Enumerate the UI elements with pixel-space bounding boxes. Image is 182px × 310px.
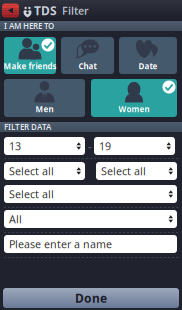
- staticText: Done: [75, 290, 107, 306]
- button[interactable]: Make friends: [4, 37, 56, 74]
- button[interactable]: All: [4, 210, 177, 228]
- button[interactable]: Select all: [96, 162, 177, 180]
- staticText: Please enter a name: [9, 237, 112, 251]
- button[interactable]: Women: [91, 79, 177, 117]
- staticText: Filter: [62, 3, 89, 18]
- button[interactable]: 19: [94, 137, 175, 155]
- staticText: Men: [35, 104, 53, 114]
- staticText: FILTER DATA: [4, 122, 51, 132]
- staticText: Chat: [78, 61, 96, 71]
- staticText: I AM HERE TO: [4, 21, 54, 31]
- staticText: 19: [99, 139, 111, 153]
- staticText: Date: [138, 61, 157, 71]
- staticText: Women: [118, 104, 149, 114]
- button[interactable]: Back: [0, 3, 19, 17]
- staticText: All: [9, 212, 22, 226]
- button[interactable]: Men: [4, 79, 85, 117]
- button[interactable]: Select all: [4, 162, 85, 180]
- button[interactable]: Done: [3, 288, 179, 308]
- staticText: -: [88, 139, 91, 153]
- button[interactable]: Select all: [4, 185, 177, 203]
- button[interactable]: 13: [4, 137, 85, 155]
- staticText: 13: [9, 139, 21, 153]
- button[interactable]: Chat: [61, 37, 114, 74]
- button[interactable]: Date: [119, 37, 177, 74]
- button[interactable]: Please enter a name: [4, 235, 177, 253]
- staticText: Make friends: [3, 61, 56, 71]
- staticText: Select all: [101, 164, 146, 178]
- staticText: Select all: [9, 187, 54, 201]
- staticText: Select all: [9, 164, 54, 178]
- staticText: TDS: [34, 2, 57, 18]
